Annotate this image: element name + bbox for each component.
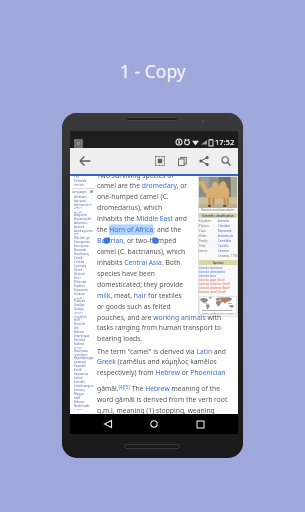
staticText: Kingdom: bbox=[199, 219, 212, 223]
staticText: Кыргызча bbox=[74, 372, 88, 376]
staticText: አማርኛ bbox=[74, 207, 82, 210]
button[interactable]: Back bbox=[72, 148, 98, 174]
staticText: ქართული bbox=[74, 353, 88, 356]
staticText: Esperanto bbox=[74, 288, 88, 292]
staticText: العربية bbox=[74, 210, 82, 213]
staticText: Linnaeus, 1758 bbox=[218, 254, 237, 258]
staticText: Global range of the Camelus bbox=[199, 311, 237, 314]
staticText: 한국어 bbox=[74, 311, 83, 315]
staticText: Հայերեն bbox=[74, 315, 87, 318]
staticText: Azərbaycanca bbox=[74, 229, 93, 233]
button[interactable]: Share bbox=[193, 148, 215, 174]
staticText: Bân-lâm-gú bbox=[74, 236, 90, 240]
staticText: Hrvatski bbox=[74, 322, 86, 326]
staticText: Bahasa Melayu bbox=[74, 400, 94, 404]
staticText: Tribe: bbox=[199, 244, 207, 248]
button[interactable]: Copy bbox=[171, 148, 193, 174]
staticText: Аҧсшәа bbox=[74, 199, 86, 203]
staticText: Camelus moreli (fossil) bbox=[199, 290, 226, 294]
staticText: Scientific classification bbox=[202, 214, 234, 218]
staticText: עברית bbox=[74, 346, 82, 349]
staticText: Camelus bactrianus bbox=[199, 266, 223, 270]
staticText: Alemannisch bbox=[74, 203, 92, 207]
staticText: Kiswahili bbox=[74, 364, 86, 368]
staticText: فارسی bbox=[74, 296, 83, 299]
staticText: Camelus hesternus (fossil) bbox=[199, 282, 230, 286]
staticText: 17:52 bbox=[215, 137, 235, 147]
staticText: Chordata bbox=[218, 224, 237, 228]
staticText: मराठी bbox=[74, 396, 81, 400]
staticText: Order: bbox=[199, 234, 208, 238]
staticText: Printable version bbox=[74, 179, 94, 187]
staticText: Eesti bbox=[74, 276, 81, 280]
staticText: Camelus dromedarius bbox=[199, 270, 226, 274]
staticText: हिन्दी bbox=[74, 318, 80, 322]
staticText: Latviešu bbox=[74, 380, 86, 384]
staticText: Euskara bbox=[74, 292, 85, 296]
staticText: Asturianu bbox=[74, 221, 88, 225]
staticText: Camelus ferus bbox=[199, 274, 216, 278]
staticText: Dansk bbox=[74, 268, 83, 272]
staticText: Cymraeg bbox=[74, 264, 87, 268]
staticText: Bactrian and dromedaries bbox=[199, 208, 237, 212]
staticText: Download as PDF bbox=[74, 174, 94, 179]
button[interactable]: Select all bbox=[149, 148, 171, 174]
staticText: Languages bbox=[72, 190, 87, 194]
staticText: Nederlands bbox=[74, 404, 90, 408]
staticText: Galego bbox=[74, 307, 84, 311]
staticText: Deutsch bbox=[74, 272, 86, 276]
staticText: Gaeilge bbox=[74, 303, 85, 307]
staticText: Ido bbox=[74, 326, 79, 330]
staticText: Class: bbox=[199, 229, 207, 233]
staticText: Català bbox=[74, 256, 83, 260]
staticText: Беларуская bbox=[74, 240, 90, 244]
staticText: The term "camel" is derived via Latin an… bbox=[97, 347, 236, 406]
staticText: Interlingua bbox=[74, 334, 90, 338]
staticText: Español bbox=[74, 284, 85, 288]
staticText: Lëtzebuergesch bbox=[74, 384, 94, 388]
staticText: Bosanski bbox=[74, 248, 87, 252]
staticText: Kapampangan bbox=[74, 356, 94, 360]
staticText: Camelus sivalensis (fossil) bbox=[199, 286, 230, 290]
staticText: Camelidae bbox=[218, 239, 237, 243]
staticText: Family: bbox=[199, 239, 208, 243]
staticText: Phylum: bbox=[199, 224, 210, 228]
button[interactable]: Search bbox=[215, 148, 237, 174]
staticText: Ελληνικά bbox=[74, 280, 87, 284]
staticText: 日本語 bbox=[74, 408, 83, 410]
staticText: বাংলা bbox=[74, 233, 79, 236]
staticText: Íslenska bbox=[74, 338, 86, 342]
staticText: Camelus bbox=[218, 249, 237, 253]
staticText: Animalia bbox=[218, 219, 237, 223]
staticText: Latina bbox=[74, 376, 83, 380]
staticText: Armaneashti bbox=[74, 217, 92, 221]
staticText: Bahasa Indonesia bbox=[74, 330, 94, 334]
staticText: Български bbox=[74, 244, 89, 248]
staticText: Genus: bbox=[199, 249, 208, 253]
button[interactable]: Home bbox=[144, 414, 164, 434]
staticText: Magyar bbox=[74, 392, 85, 396]
staticText: Aragonés bbox=[74, 213, 87, 217]
staticText: Avañe'ẽ bbox=[74, 225, 85, 229]
staticText: Français bbox=[74, 299, 86, 303]
staticText: Artiodactyla bbox=[218, 234, 237, 238]
staticText: Two surviving species of camel are the d… bbox=[97, 174, 188, 311]
staticText: Lietuvių bbox=[74, 388, 85, 392]
staticText: қазақша bbox=[74, 360, 87, 364]
staticText: Italiano bbox=[74, 342, 85, 346]
staticText: Čeština bbox=[74, 260, 85, 264]
button[interactable]: Recents bbox=[190, 414, 210, 434]
staticText: Afrikaans bbox=[74, 195, 87, 199]
staticText: Kurdî bbox=[74, 368, 82, 372]
staticText: Camelus gigas (fossil) bbox=[199, 278, 225, 282]
staticText: Camelini bbox=[218, 244, 237, 248]
button[interactable]: Back bbox=[98, 414, 118, 434]
staticText: Brezhoneg bbox=[74, 252, 89, 256]
staticText: g.m.l, meaning (1) stopping, weaning bbox=[97, 406, 215, 414]
staticText: Species bbox=[213, 261, 224, 265]
staticText: 1 - Copy bbox=[120, 59, 186, 83]
staticText: Basa Jawa bbox=[74, 349, 88, 353]
staticText: Mammalia bbox=[218, 229, 237, 233]
staticText: pouches, and are working animals with ta… bbox=[97, 313, 236, 343]
